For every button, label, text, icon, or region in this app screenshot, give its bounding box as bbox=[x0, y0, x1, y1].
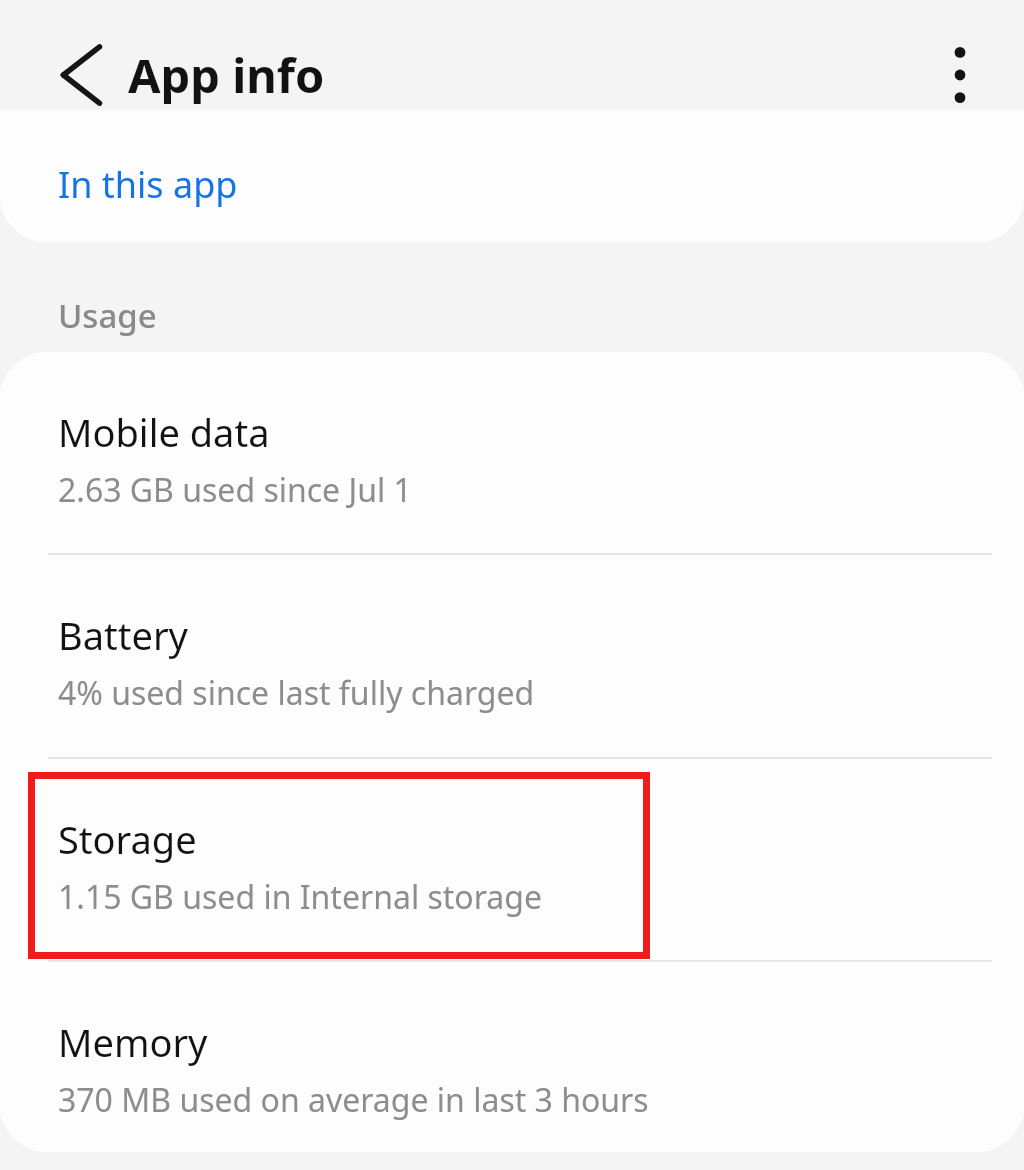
staticText: In this app bbox=[58, 160, 238, 209]
staticText: 370 MB used on average in last 3 hours bbox=[58, 1078, 649, 1122]
staticText: 4% used since last fully charged bbox=[58, 671, 535, 715]
button[interactable]: Storage bbox=[0, 759, 1024, 960]
staticText: Storage bbox=[58, 813, 197, 865]
button[interactable]: Memory bbox=[0, 962, 1024, 1152]
staticText: App info bbox=[128, 43, 325, 107]
button[interactable]: More options bbox=[910, 20, 1010, 130]
staticText: Battery bbox=[58, 609, 188, 661]
button[interactable]: Battery bbox=[0, 555, 1024, 757]
staticText: Memory bbox=[58, 1016, 208, 1068]
staticText: 1.15 GB used in Internal storage bbox=[58, 875, 542, 919]
staticText: Mobile data bbox=[58, 406, 270, 458]
button[interactable]: Back bbox=[26, 20, 136, 130]
staticText: 2.63 GB used since Jul 1 bbox=[58, 468, 412, 512]
button[interactable]: Mobile data bbox=[0, 352, 1024, 553]
button[interactable]: In this app bbox=[0, 110, 1024, 242]
staticText: Usage bbox=[58, 293, 157, 338]
